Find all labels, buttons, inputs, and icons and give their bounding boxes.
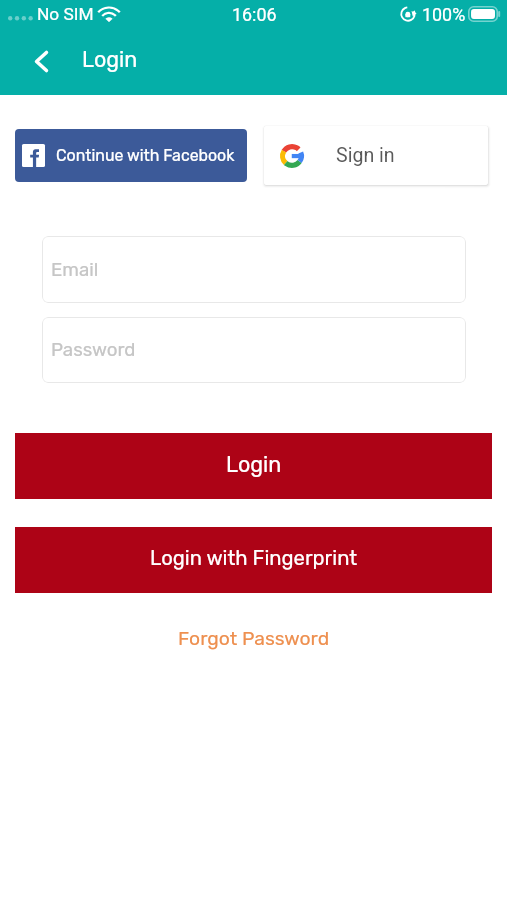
staticText: Continue with Facebook bbox=[56, 146, 235, 165]
staticText: No SIM bbox=[37, 4, 94, 24]
button[interactable]: Login bbox=[15, 433, 492, 499]
button[interactable]: Sign in bbox=[264, 126, 488, 185]
staticText: Email bbox=[51, 259, 99, 281]
staticText: Login bbox=[226, 452, 282, 477]
button[interactable]: Forgot Password bbox=[178, 627, 330, 650]
button[interactable]: Password bbox=[42, 317, 466, 383]
button[interactable]: Email bbox=[42, 236, 466, 303]
staticText: Login with Fingerprint bbox=[150, 546, 358, 570]
staticText: Login bbox=[82, 47, 138, 72]
staticText: 100% bbox=[422, 4, 466, 25]
button[interactable]: Continue with Facebook bbox=[15, 129, 247, 182]
staticText: Sign in bbox=[336, 144, 395, 167]
staticText: Password bbox=[51, 339, 136, 361]
staticText: 16:06 bbox=[232, 4, 277, 25]
button[interactable]: Login with Fingerprint bbox=[15, 527, 492, 593]
button[interactable]: Back bbox=[21, 45, 61, 85]
